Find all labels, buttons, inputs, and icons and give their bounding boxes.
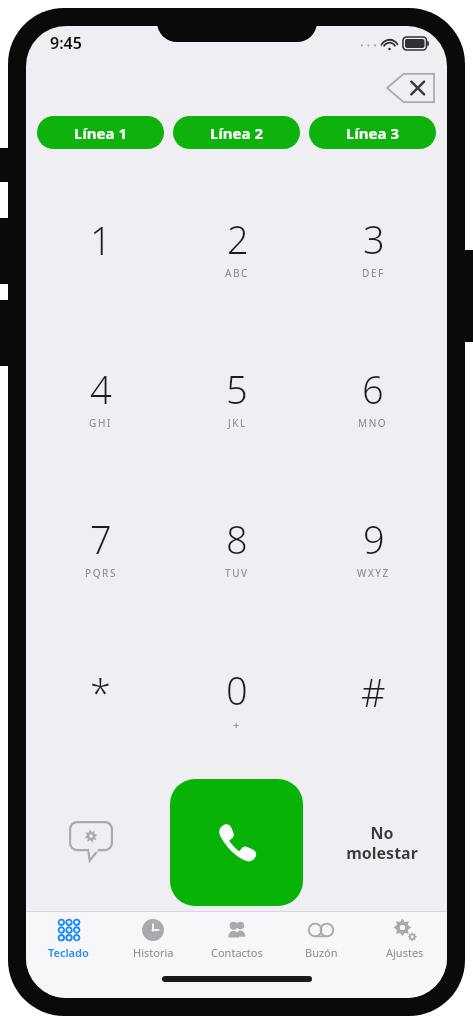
button[interactable]: Borrar: [387, 72, 435, 104]
button[interactable]: Llamar: [170, 779, 303, 906]
staticText: 3: [363, 213, 385, 265]
button[interactable]: Buzón: [279, 912, 363, 964]
button[interactable]: *: [32, 622, 169, 773]
staticText: 8: [226, 513, 248, 565]
button[interactable]: Línea 2: [173, 116, 300, 149]
staticText: 2: [227, 213, 249, 265]
staticText: +: [233, 717, 241, 732]
staticText: WXYZ: [357, 566, 390, 580]
staticText: PQRS: [85, 566, 117, 580]
button[interactable]: Teclado: [26, 912, 111, 964]
button[interactable]: 7: [32, 471, 169, 622]
button[interactable]: 3: [305, 171, 441, 321]
staticText: TUV: [225, 566, 249, 580]
button[interactable]: 1: [32, 171, 169, 321]
button[interactable]: Historia: [111, 912, 195, 964]
button[interactable]: Contactos: [195, 912, 279, 964]
button[interactable]: Línea 1: [37, 116, 164, 149]
button[interactable]: #: [305, 622, 441, 773]
staticText: 0: [226, 664, 248, 716]
staticText: GHI: [89, 416, 112, 430]
button[interactable]: 0: [169, 622, 305, 773]
staticText: *: [90, 666, 111, 718]
button[interactable]: 2: [169, 171, 305, 321]
staticText: JKL: [228, 416, 247, 430]
staticText: 9: [363, 513, 385, 565]
button[interactable]: Mensaje rápido: [26, 773, 155, 911]
staticText: Ajustes: [386, 945, 424, 960]
button[interactable]: 5: [169, 321, 305, 471]
staticText: Línea 1: [74, 123, 128, 143]
button[interactable]: Línea 3: [309, 116, 436, 149]
staticText: 4: [90, 363, 112, 415]
button[interactable]: Ajustes: [363, 912, 447, 964]
staticText: 1: [90, 214, 112, 266]
staticText: 9:45: [50, 32, 82, 54]
button[interactable]: 4: [32, 321, 169, 471]
staticText: Contactos: [211, 945, 263, 960]
staticText: Línea 3: [346, 123, 400, 143]
staticText: No molestar: [346, 822, 418, 863]
staticText: 7: [90, 513, 112, 565]
staticText: Buzón: [305, 945, 338, 960]
staticText: 5: [226, 363, 248, 415]
staticText: ABC: [225, 266, 250, 280]
staticText: Historia: [133, 945, 174, 960]
staticText: DEF: [362, 266, 385, 280]
staticText: MNO: [358, 416, 388, 430]
staticText: 6: [362, 363, 384, 415]
button[interactable]: No molestar: [317, 773, 447, 911]
staticText: #: [361, 666, 386, 718]
button[interactable]: 9: [305, 471, 441, 622]
staticText: Línea 2: [210, 123, 264, 143]
staticText: Teclado: [48, 945, 89, 960]
button[interactable]: 8: [169, 471, 305, 622]
button[interactable]: 6: [305, 321, 441, 471]
